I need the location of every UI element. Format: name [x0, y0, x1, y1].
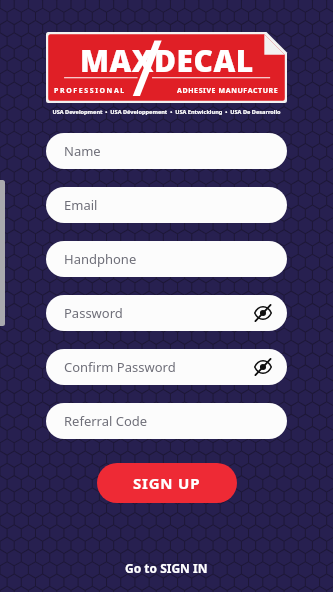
staticText: PROFESSIONAL — [54, 86, 126, 96]
button[interactable]: Name — [46, 133, 287, 169]
button[interactable]: Email — [46, 187, 287, 223]
button[interactable]: Password — [46, 295, 287, 331]
staticText: Email — [64, 196, 98, 214]
button[interactable]: Referral Code — [46, 403, 287, 439]
staticText: MAXDECAL — [80, 40, 254, 81]
staticText: Confirm Password — [64, 358, 176, 376]
button[interactable]: Go to SIGN IN — [113, 556, 220, 580]
button[interactable]: Confirm Password — [46, 349, 287, 385]
staticText: USA Development • USA Développement • US… — [46, 108, 287, 116]
button[interactable]: Toggle password visibility — [253, 357, 273, 377]
button[interactable]: Open drawer — [0, 180, 5, 326]
staticText: Go to SIGN IN — [125, 560, 208, 576]
staticText: SIGN UP — [133, 473, 201, 493]
staticText: Handphone — [64, 250, 137, 268]
button[interactable]: SIGN UP — [97, 463, 237, 503]
staticText: ADHESIVE MANUFACTURE — [177, 86, 279, 96]
button[interactable]: Toggle password visibility — [253, 303, 273, 323]
button[interactable]: Handphone — [46, 241, 287, 277]
staticText: Referral Code — [64, 412, 148, 430]
staticText: Password — [64, 304, 123, 322]
staticText: Name — [64, 142, 101, 160]
